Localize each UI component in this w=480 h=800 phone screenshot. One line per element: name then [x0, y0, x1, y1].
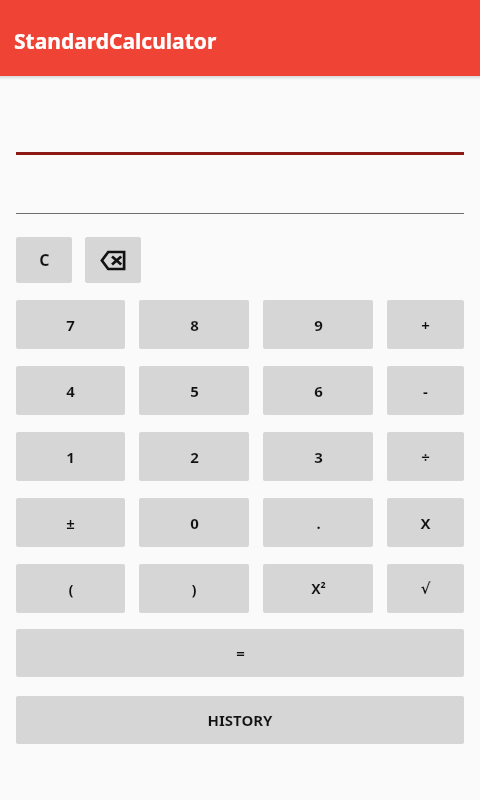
staticText: 9 [314, 315, 323, 335]
staticText: √ [420, 580, 431, 597]
button[interactable]: X [387, 498, 464, 547]
staticText: . [316, 513, 321, 533]
staticText: - [423, 381, 428, 401]
staticText: C [39, 249, 50, 271]
button[interactable]: ÷ [387, 432, 464, 481]
staticText: 2 [190, 447, 199, 467]
staticText: 3 [314, 447, 323, 467]
button[interactable]: - [387, 366, 464, 415]
button[interactable]: √ [387, 564, 464, 613]
button[interactable]: HISTORY [16, 696, 464, 744]
staticText: 1 [66, 447, 75, 467]
staticText: 4 [66, 381, 75, 401]
button[interactable]: Backspace [85, 237, 141, 283]
staticText: ( [68, 579, 74, 599]
button[interactable]: C [16, 237, 72, 283]
staticText: 6 [314, 381, 323, 401]
staticText: 5 [190, 381, 199, 401]
staticText: HISTORY [207, 710, 273, 730]
button[interactable]: ) [139, 564, 249, 613]
button[interactable]: 8 [139, 300, 249, 349]
button[interactable]: + [387, 300, 464, 349]
staticText: 0 [190, 513, 199, 533]
staticText: 7 [66, 315, 75, 335]
staticText: + [421, 315, 430, 335]
button[interactable]: ( [16, 564, 125, 613]
button[interactable]: 7 [16, 300, 125, 349]
staticText: ) [191, 579, 197, 599]
button[interactable]: 9 [263, 300, 373, 349]
staticText: ÷ [421, 447, 430, 467]
button[interactable]: 5 [139, 366, 249, 415]
staticText: ± [66, 513, 75, 533]
button[interactable]: X² [263, 564, 373, 613]
staticText: = [236, 643, 245, 663]
button[interactable]: 6 [263, 366, 373, 415]
staticText: 8 [190, 315, 199, 335]
staticText: StandardCalculator [14, 27, 217, 56]
staticText: X [420, 513, 431, 533]
button[interactable]: 0 [139, 498, 249, 547]
button[interactable]: 4 [16, 366, 125, 415]
staticText: X² [311, 579, 326, 598]
button[interactable]: = [16, 629, 464, 677]
button[interactable]: . [263, 498, 373, 547]
button[interactable]: ± [16, 498, 125, 547]
button[interactable]: 3 [263, 432, 373, 481]
button[interactable]: 2 [139, 432, 249, 481]
button[interactable]: 1 [16, 432, 125, 481]
